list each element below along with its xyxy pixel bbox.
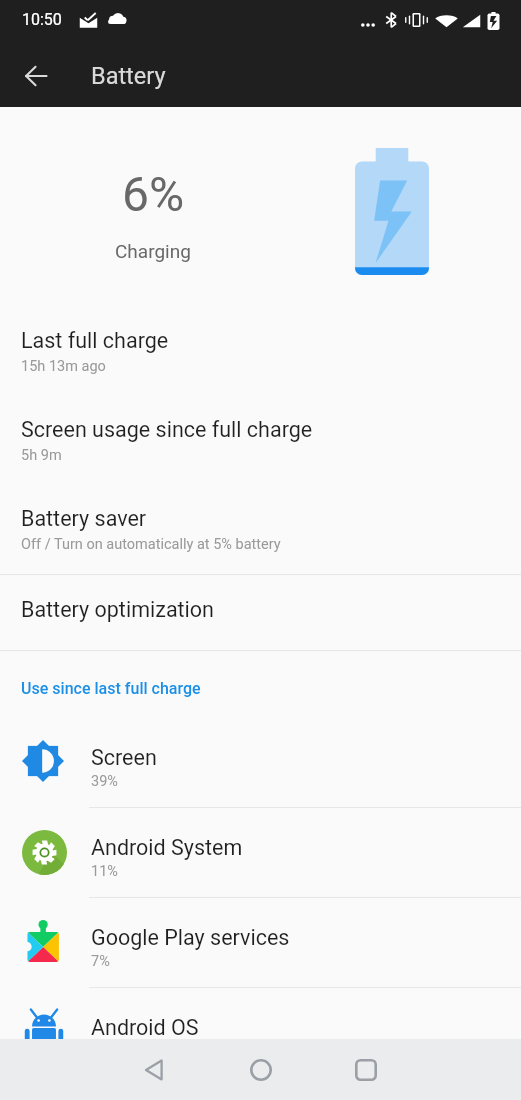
button[interactable]: Navigate up [14,54,58,98]
staticText: Android OS [91,1015,199,1040]
button[interactable]: Google Play services [0,898,521,988]
staticText: 15h 13m ago [21,358,106,375]
staticText: Google Play services [91,925,290,950]
staticText: Charging [115,240,191,262]
staticText: 11% [91,863,118,880]
button[interactable]: Android System [0,808,521,898]
staticText: Use since last full charge [21,679,201,698]
staticText: Battery [91,62,166,90]
button[interactable]: Screen [0,718,521,808]
staticText: Screen usage since full charge [21,417,313,442]
button[interactable]: Home [233,1042,289,1098]
staticText: Last full charge [21,328,169,353]
button[interactable]: Battery optimization [0,575,521,650]
staticText: 10:50 [22,10,62,29]
button[interactable]: Last full charge [0,297,521,386]
staticText: 6% [122,166,185,222]
button[interactable]: Back [126,1042,182,1098]
staticText: Screen [91,745,157,770]
button[interactable]: Battery saver [0,475,521,564]
button[interactable]: Android OS [0,988,521,1078]
staticText: 39% [91,773,118,790]
staticText: 7% [91,953,110,970]
staticText: Battery saver [21,506,147,531]
button[interactable]: Recent apps [338,1042,394,1098]
staticText: 5h 9m [21,447,62,464]
staticText: Android System [91,835,243,860]
staticText: Battery optimization [21,597,214,622]
button[interactable]: Screen usage since full charge [0,386,521,475]
staticText: Off / Turn on automatically at 5% batter… [21,536,281,553]
